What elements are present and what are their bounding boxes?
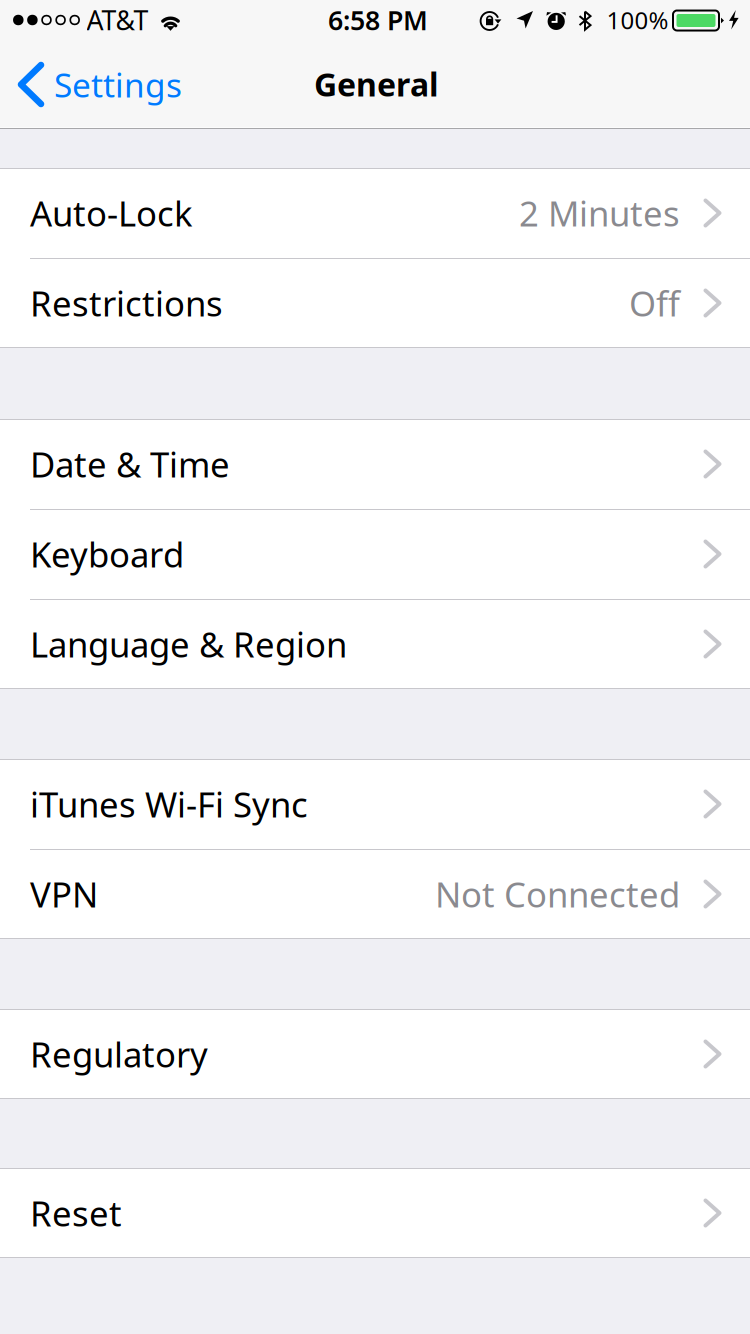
button[interactable]: VPN — [0, 849, 750, 939]
staticText: General — [314, 63, 439, 105]
staticText: AT&T — [86, 2, 148, 38]
staticText: Not Connected — [435, 871, 680, 917]
staticText: Reset — [30, 1190, 122, 1236]
button[interactable]: Settings — [1, 40, 196, 129]
button[interactable]: Restrictions — [0, 258, 750, 348]
button[interactable]: Reset — [0, 1168, 750, 1258]
staticText: Restrictions — [30, 280, 223, 326]
staticText: Off — [629, 280, 680, 326]
staticText: Date & Time — [30, 441, 230, 487]
staticText: Settings — [54, 62, 182, 107]
button[interactable]: Auto-Lock — [0, 168, 750, 258]
staticText: 6:58 PM — [328, 2, 428, 38]
button[interactable]: iTunes Wi-Fi Sync — [0, 759, 750, 849]
button[interactable]: Language & Region — [0, 599, 750, 689]
staticText: Keyboard — [30, 531, 184, 577]
staticText: Auto-Lock — [30, 190, 193, 236]
staticText: Language & Region — [30, 621, 347, 667]
staticText: iTunes Wi-Fi Sync — [30, 781, 308, 827]
button[interactable]: Date & Time — [0, 419, 750, 509]
button[interactable]: Keyboard — [0, 509, 750, 599]
staticText: 100% — [606, 4, 668, 36]
staticText: 2 Minutes — [519, 190, 680, 236]
staticText: Regulatory — [30, 1031, 208, 1077]
button[interactable]: Regulatory — [0, 1009, 750, 1099]
staticText: VPN — [30, 871, 98, 917]
